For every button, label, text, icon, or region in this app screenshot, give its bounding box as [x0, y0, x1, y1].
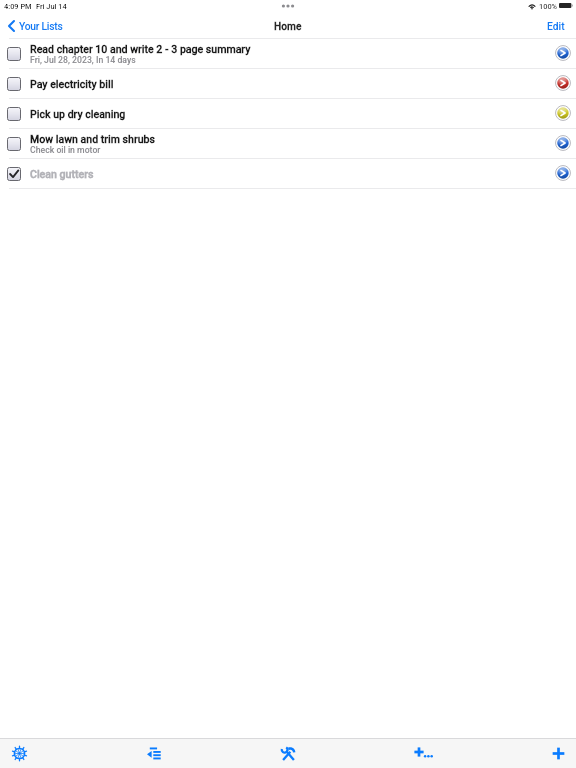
button[interactable]: Show details: [551, 41, 575, 65]
button[interactable]: Edit: [539, 17, 576, 35]
button[interactable]: Tools: [275, 739, 301, 768]
button[interactable]: Read chapter 10 and write 2 - 3 page sum…: [0, 39, 576, 69]
button[interactable]: Add with options: [411, 739, 437, 768]
staticText: Pay electricity bill: [30, 78, 114, 90]
button[interactable]: Your Lists: [0, 17, 71, 35]
button[interactable]: Show details: [551, 161, 575, 185]
staticText: Fri, Jul 28, 2023, In 14 days: [30, 55, 136, 65]
staticText: Your Lists: [19, 20, 63, 32]
button[interactable]: Add: [545, 739, 571, 768]
button[interactable]: Show details: [551, 71, 575, 95]
staticText: Pick up dry cleaning: [30, 108, 126, 120]
staticText: Home: [274, 21, 302, 33]
staticText: Mow lawn and trim shrubs: [30, 133, 155, 145]
button[interactable]: Decrease indent: [141, 739, 167, 768]
button[interactable]: Pick up dry cleaning: [0, 99, 576, 129]
button[interactable]: Clean gutters: [0, 159, 576, 189]
button[interactable]: Mow lawn and trim shrubs: [0, 129, 576, 159]
staticText: 100%: [539, 2, 558, 11]
button[interactable]: Show details: [551, 131, 575, 155]
staticText: Clean gutters: [30, 168, 94, 180]
staticText: Check oil in motor: [30, 145, 101, 155]
staticText: Read chapter 10 and write 2 - 3 page sum…: [30, 43, 251, 55]
staticText: Fri Jul 14: [36, 2, 67, 11]
staticText: 4:09 PM: [4, 2, 32, 11]
button[interactable]: Pay electricity bill: [0, 69, 576, 99]
button[interactable]: Settings: [6, 739, 32, 768]
button[interactable]: Show details: [551, 101, 575, 125]
